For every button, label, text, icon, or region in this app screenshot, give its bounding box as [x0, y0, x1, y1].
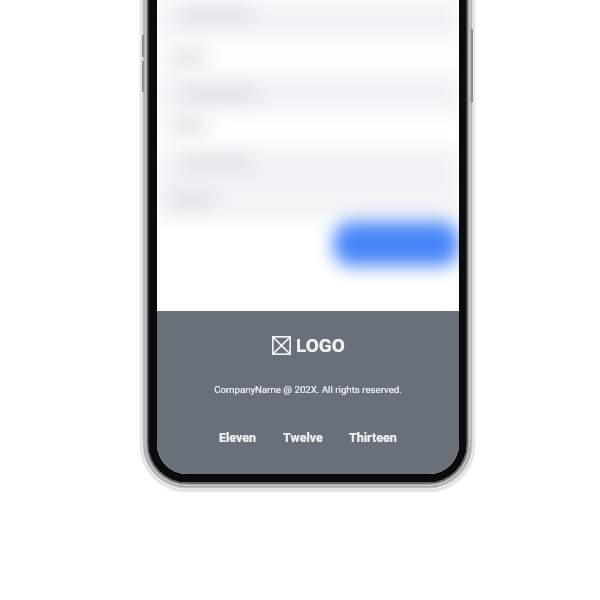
staticText: Thirteen — [349, 430, 397, 445]
button[interactable]: Submit — [337, 222, 457, 258]
button[interactable]: Thirteen — [349, 430, 397, 445]
button[interactable]: LOGO — [272, 334, 345, 356]
staticText: Twelve — [283, 430, 323, 445]
staticText: LOGO — [296, 334, 345, 356]
staticText: CompanyName @ 202X. All rights reserved. — [214, 384, 402, 395]
staticText: Eleven — [219, 430, 257, 445]
button[interactable]: Eleven — [219, 430, 257, 445]
button[interactable]: Twelve — [283, 430, 323, 445]
